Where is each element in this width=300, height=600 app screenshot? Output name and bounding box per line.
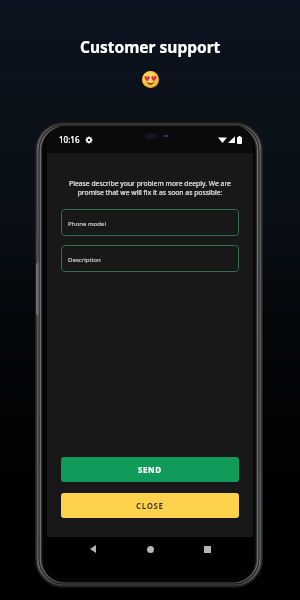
staticText: Description (68, 255, 101, 263)
button[interactable]: Back (82, 538, 104, 560)
staticText: 10:16 (59, 134, 80, 145)
button[interactable]: Description (61, 245, 239, 272)
staticText: Customer support (80, 36, 221, 57)
staticText: Phone model (68, 219, 107, 227)
button[interactable]: Phone model (61, 209, 239, 236)
staticText: CLOSE (136, 500, 164, 511)
button[interactable]: Recent apps (196, 538, 218, 560)
button[interactable]: SEND (61, 457, 239, 482)
button[interactable]: Home (139, 538, 161, 560)
button[interactable]: CLOSE (61, 493, 239, 518)
staticText: SEND (138, 464, 162, 475)
staticText: Please describe your problem more deeply… (61, 179, 239, 197)
